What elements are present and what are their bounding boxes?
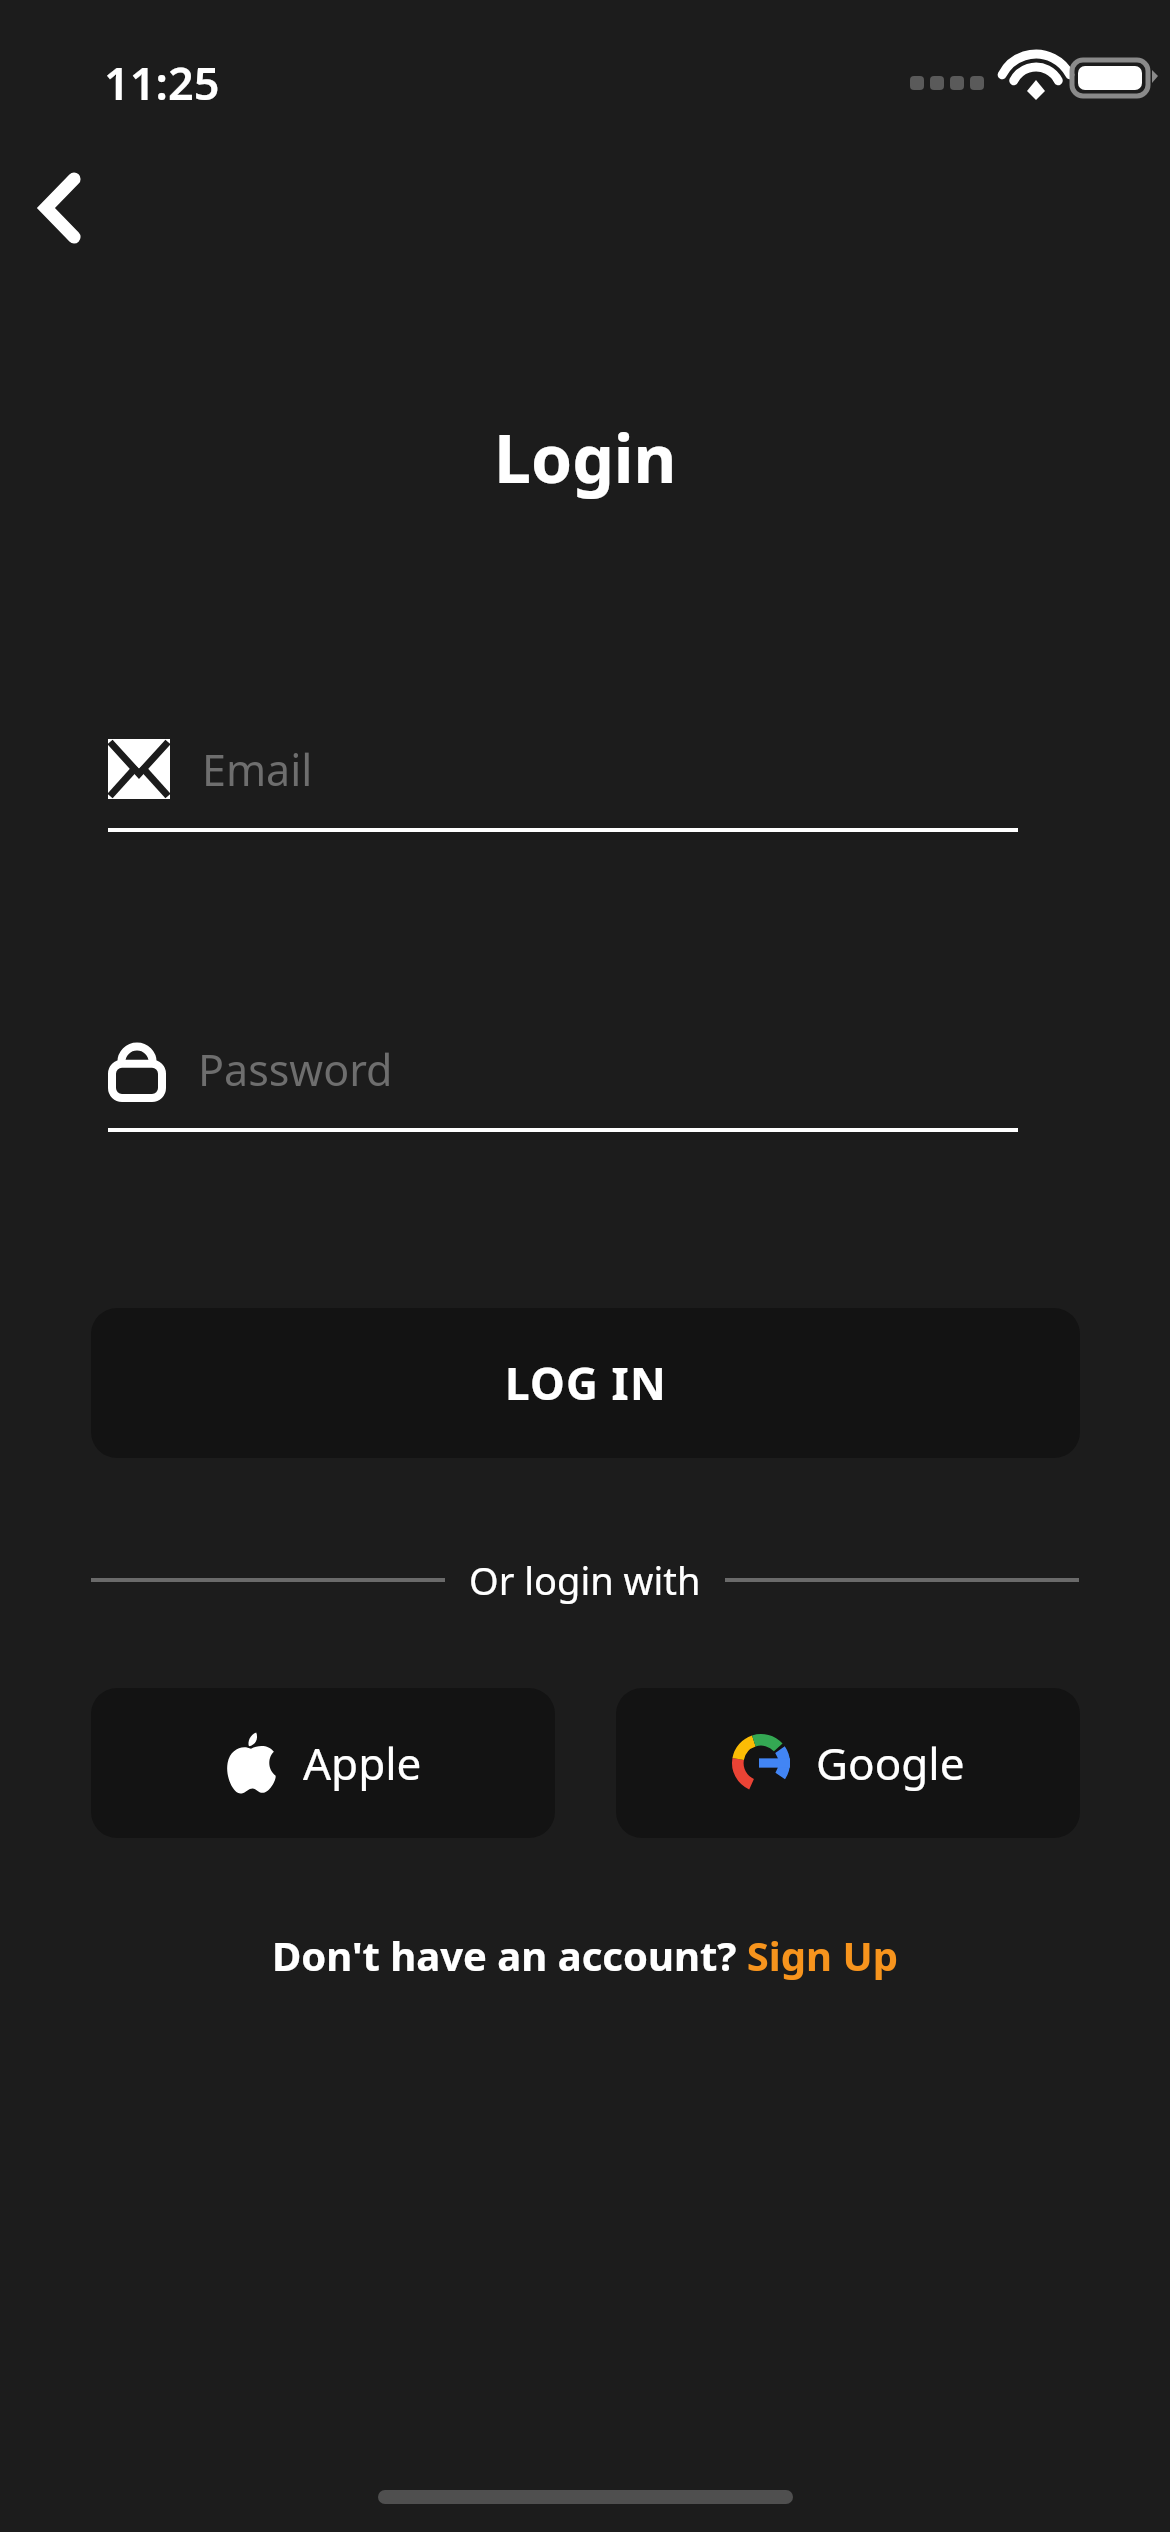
staticText: Don't have an account? Sign Up — [272, 1928, 898, 1982]
button[interactable]: LOG IN — [91, 1308, 1080, 1458]
staticText: Email — [202, 740, 313, 799]
button[interactable]: Password — [108, 1022, 1018, 1132]
staticText: Google — [816, 1733, 965, 1793]
button[interactable]: Back — [10, 158, 110, 258]
staticText: Apple — [303, 1733, 422, 1793]
staticText: LOG IN — [505, 1353, 667, 1413]
staticText: Password — [198, 1040, 393, 1099]
button[interactable]: Email — [108, 722, 1018, 832]
staticText: 11:25 — [104, 52, 220, 113]
staticText: Or login with — [469, 1554, 701, 1606]
staticText: Login — [494, 412, 677, 502]
button[interactable]: Google — [616, 1688, 1080, 1838]
button[interactable]: Don't have an account? Sign Up — [272, 1928, 898, 1982]
button[interactable]: Apple — [91, 1688, 555, 1838]
